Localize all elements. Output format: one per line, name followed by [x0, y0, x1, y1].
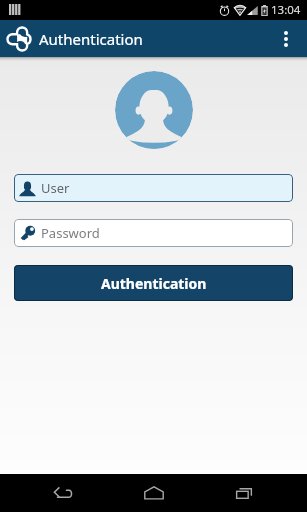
staticText: Authentication [39, 29, 143, 49]
staticText: 13:04 [271, 2, 301, 18]
staticText: Password [41, 224, 100, 242]
button[interactable]: More options [271, 24, 301, 54]
button[interactable]: User [14, 174, 293, 202]
staticText: User [41, 179, 70, 197]
button[interactable]: Authentication [14, 265, 293, 301]
staticText: Authentication [101, 274, 207, 293]
button[interactable]: Back [35, 474, 91, 512]
button[interactable]: Home [126, 474, 182, 512]
button[interactable]: Recents [216, 474, 272, 512]
button[interactable]: Password [14, 219, 293, 247]
